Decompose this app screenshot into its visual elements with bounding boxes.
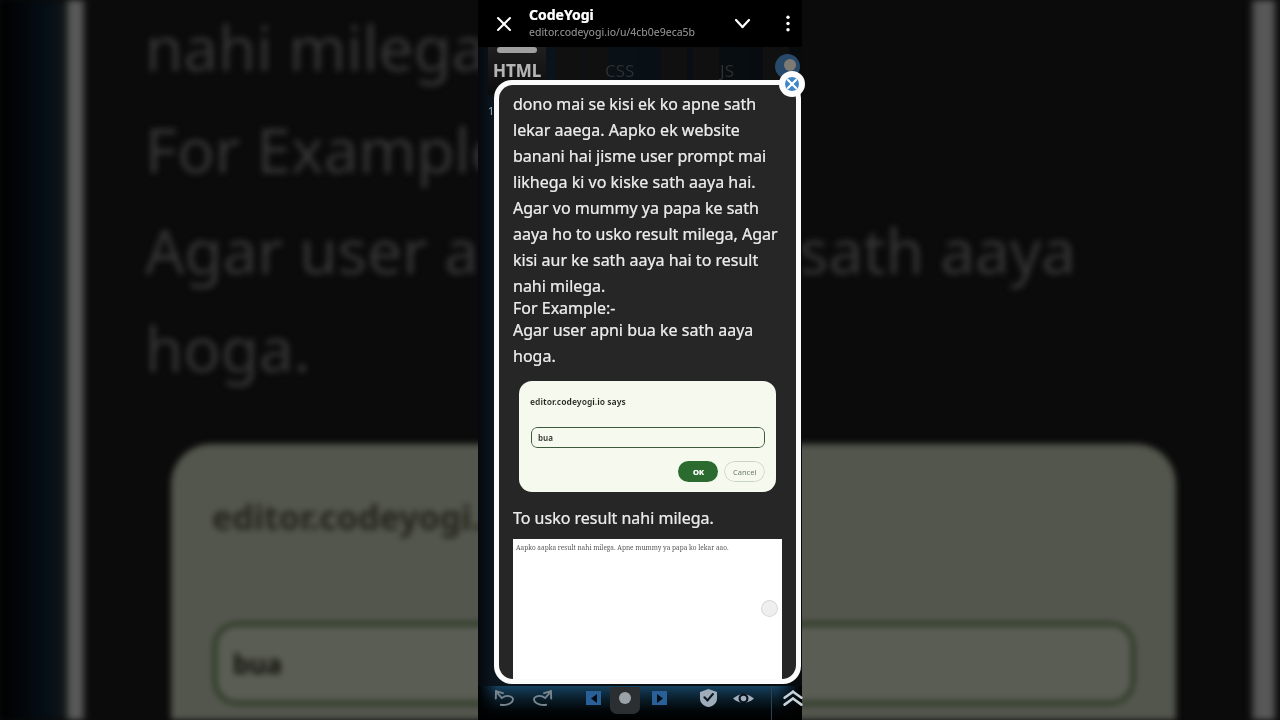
staticText: Agar user apni bua ke sath aaya hoga.: [513, 319, 785, 367]
button[interactable]: Cancel: [724, 461, 765, 482]
staticText: OK: [693, 467, 704, 477]
staticText: dono mai se kisi ek ko apne sath lekar a…: [513, 93, 785, 297]
button[interactable]: Next: [643, 686, 675, 720]
button[interactable]: Expand: [777, 686, 809, 720]
button[interactable]: Redo: [526, 686, 558, 720]
staticText: Cancel: [733, 467, 757, 477]
staticText: bua: [233, 646, 282, 681]
staticText: For Example:-: [513, 297, 616, 319]
button[interactable]: Expand: [724, 0, 760, 47]
staticText: CSS: [605, 59, 635, 82]
staticText: CodeYogi: [529, 5, 594, 24]
staticText: For Example:-: [145, 107, 1280, 191]
button[interactable]: Verified: [692, 686, 724, 720]
button[interactable]: Previous: [577, 686, 609, 720]
staticText: To usko result nahi milega.: [513, 507, 714, 529]
staticText: JS: [720, 59, 734, 82]
button[interactable]: Close: [486, 0, 521, 47]
button[interactable]: Run: [611, 686, 641, 720]
button[interactable]: Close panel: [785, 77, 799, 91]
button[interactable]: Preview: [727, 686, 759, 720]
staticText: editor.codeyogi.io/u/4cb0e9eca5b: [529, 25, 696, 39]
button[interactable]: OK: [678, 461, 718, 482]
staticText: editor.codeyogi.io says: [530, 396, 626, 408]
button[interactable]: CSS: [590, 47, 650, 95]
staticText: editor.codeyogi.io says: [212, 494, 596, 540]
staticText: 1: [488, 103, 495, 118]
staticText: Aapko aapka result nahi milega. Apne mum…: [516, 543, 729, 552]
staticText: nahi milega.: [145, 5, 1280, 89]
button[interactable]: Undo: [489, 686, 521, 720]
button[interactable]: More options: [774, 0, 802, 47]
button[interactable]: JS: [697, 47, 757, 95]
staticText: hoga.: [145, 306, 1280, 390]
staticText: Agar user apni bua ke sath aaya: [145, 208, 1280, 292]
button[interactable]: HTML: [487, 47, 547, 95]
staticText: HTML: [493, 59, 542, 82]
staticText: bua: [538, 432, 554, 443]
